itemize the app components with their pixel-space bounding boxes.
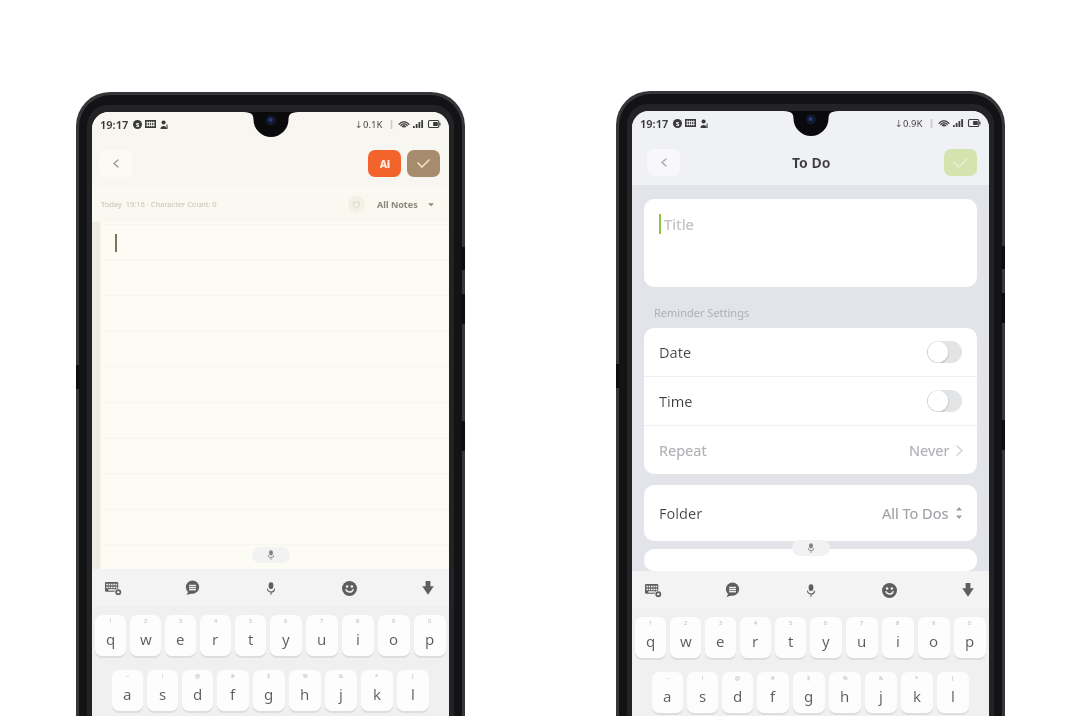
button[interactable]: @ (722, 672, 753, 713)
staticText: ( (412, 672, 414, 679)
staticText: Time (659, 391, 693, 411)
staticText: w (140, 629, 152, 649)
button[interactable]: 9 (378, 615, 410, 656)
button[interactable]: 6 (270, 615, 302, 656)
button[interactable]: Time (644, 377, 977, 425)
staticText: p (425, 629, 435, 649)
staticText: e (716, 631, 725, 651)
button[interactable]: ! (147, 670, 178, 711)
button[interactable]: & (865, 672, 897, 713)
button[interactable]: 9 (918, 617, 950, 658)
staticText: j (339, 684, 343, 704)
staticText: 6 (284, 617, 288, 624)
button[interactable]: Hide keyboard (417, 577, 439, 599)
button[interactable]: Ai (368, 150, 401, 177)
button[interactable]: % (289, 670, 321, 711)
staticText: % (303, 672, 308, 679)
button[interactable]: Folder (644, 485, 977, 541)
button[interactable]: Emoji (878, 579, 900, 601)
button[interactable]: Voice input (252, 547, 290, 563)
button[interactable]: Back (99, 150, 132, 177)
button[interactable]: 0 (954, 617, 986, 658)
staticText: o (389, 629, 399, 649)
button[interactable]: Voice (260, 577, 282, 599)
button[interactable]: @ (182, 670, 213, 711)
button[interactable]: Save (944, 149, 977, 176)
button[interactable]: 8 (882, 617, 914, 658)
staticText: @ (735, 674, 740, 681)
button[interactable]: ! (687, 672, 718, 713)
button[interactable]: Voice (800, 579, 822, 601)
button[interactable]: Pin (348, 196, 365, 213)
staticText: 7 (860, 619, 864, 626)
button[interactable]: Voice input (792, 540, 830, 556)
button[interactable]: ~ (112, 670, 143, 711)
staticText: S (676, 120, 680, 128)
button[interactable]: Date (644, 328, 977, 376)
staticText: Ai (380, 157, 390, 171)
button[interactable]: ~ (652, 672, 683, 713)
button[interactable]: Repeat (644, 426, 977, 474)
button[interactable]: Hide keyboard (957, 579, 979, 601)
staticText: w (680, 631, 692, 651)
staticText: r (752, 631, 759, 651)
button[interactable]: 2 (670, 617, 701, 658)
button[interactable]: 2 (130, 615, 161, 656)
button[interactable]: ( (397, 670, 429, 711)
staticText: ↓0.1K (355, 118, 383, 131)
button[interactable]: 4 (740, 617, 771, 658)
button[interactable]: 0 (414, 615, 446, 656)
button[interactable]: All Notes (377, 198, 434, 210)
staticText: # (231, 672, 235, 679)
button[interactable]: 6 (810, 617, 842, 658)
staticText: All Notes (377, 198, 418, 210)
staticText: * (915, 674, 919, 681)
button[interactable]: ( (937, 672, 969, 713)
staticText: q (646, 631, 656, 651)
button[interactable]: 7 (306, 615, 338, 656)
staticText: All To Dos (882, 503, 949, 523)
button[interactable]: Title (644, 199, 977, 287)
staticText: $ (267, 672, 271, 679)
button[interactable]: Back (647, 149, 680, 176)
button[interactable]: 1 (95, 615, 126, 656)
button[interactable]: 4 (200, 615, 231, 656)
staticText: o (929, 631, 939, 651)
button[interactable]: 3 (705, 617, 736, 658)
button[interactable]: $ (253, 670, 285, 711)
button[interactable]: & (325, 670, 357, 711)
button[interactable]: 1 (635, 617, 666, 658)
staticText: y (282, 629, 290, 649)
staticText: 7 (320, 617, 324, 624)
button[interactable]: # (757, 672, 789, 713)
staticText: Reminder Settings (654, 305, 750, 320)
staticText: u (317, 629, 327, 649)
staticText: d (193, 684, 203, 704)
button[interactable]: Done (407, 150, 440, 177)
button[interactable]: Keyboard settings (642, 579, 664, 601)
staticText: ~ (666, 674, 670, 681)
button[interactable]: 8 (342, 615, 374, 656)
button[interactable]: 3 (165, 615, 196, 656)
staticText: 2 (684, 619, 688, 626)
staticText: h (300, 684, 310, 704)
button[interactable]: * (361, 670, 393, 711)
button[interactable]: 5 (775, 617, 806, 658)
staticText: 0 (428, 617, 432, 624)
button[interactable]: Stickers (181, 577, 203, 599)
button[interactable]: # (217, 670, 249, 711)
button[interactable]: Stickers (721, 579, 743, 601)
button[interactable]: $ (793, 672, 825, 713)
button[interactable]: 5 (235, 615, 266, 656)
button[interactable]: % (829, 672, 861, 713)
staticText: l (411, 684, 415, 704)
button[interactable]: Keyboard settings (102, 577, 124, 599)
button[interactable]: Emoji (338, 577, 360, 599)
button[interactable]: * (901, 672, 933, 713)
staticText: To Do (792, 153, 831, 172)
staticText: & (339, 672, 344, 679)
staticText: e (176, 629, 185, 649)
staticText: s (159, 684, 167, 704)
staticText: ↓0.9K (895, 117, 923, 130)
button[interactable]: 7 (846, 617, 878, 658)
